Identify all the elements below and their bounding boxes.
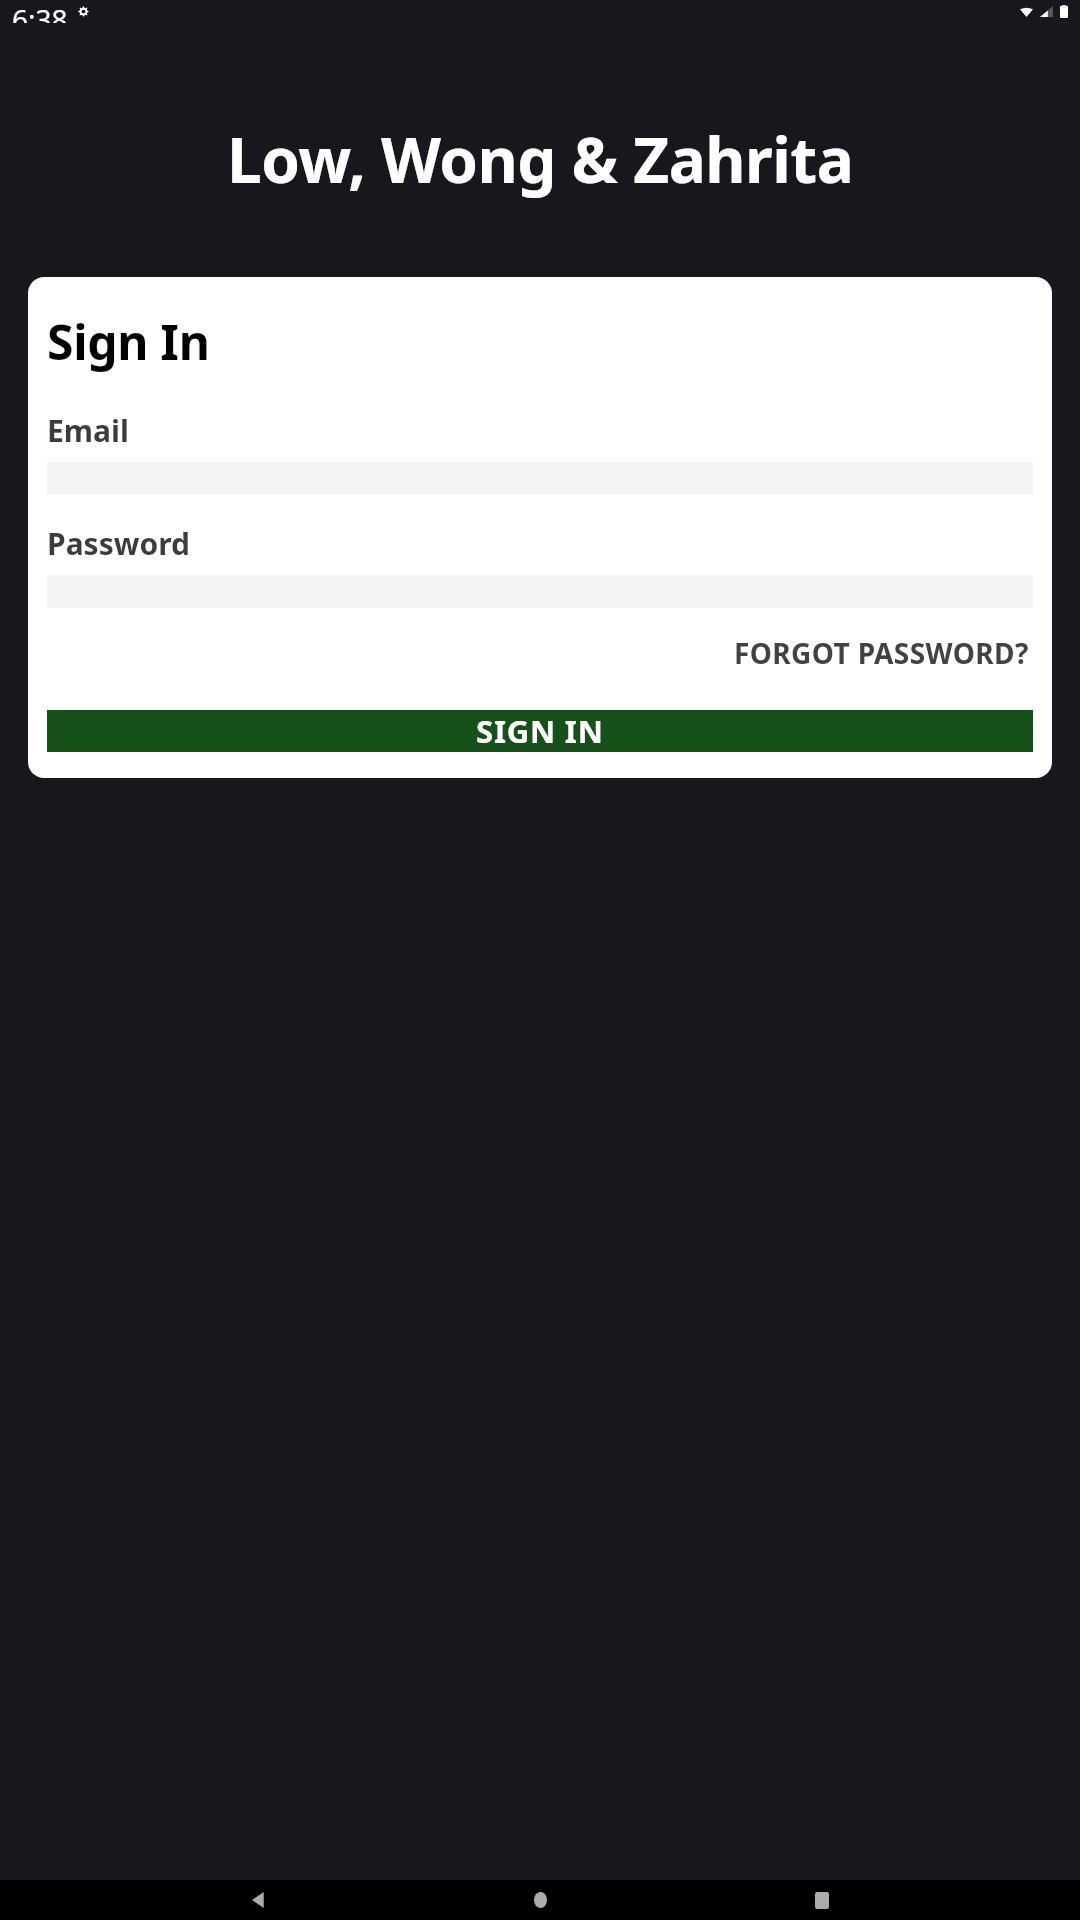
staticText: Password <box>47 523 190 564</box>
staticText: Email <box>47 410 129 451</box>
staticText: SIGN IN <box>476 710 604 752</box>
staticText: FORGOT PASSWORD? <box>734 634 1029 672</box>
button[interactable]: Home <box>516 1880 564 1920</box>
other: Settings <box>78 6 89 17</box>
staticText: Low, Wong & Zahrita <box>227 117 854 201</box>
button[interactable]: FORGOT PASSWORD? <box>730 626 1033 680</box>
button[interactable]: SIGN IN <box>47 710 1033 752</box>
button[interactable]: Recent apps <box>798 1880 846 1920</box>
staticText: 6:38 <box>12 0 68 23</box>
staticText: Sign In <box>47 309 210 374</box>
button[interactable]: Back <box>234 1880 282 1920</box>
